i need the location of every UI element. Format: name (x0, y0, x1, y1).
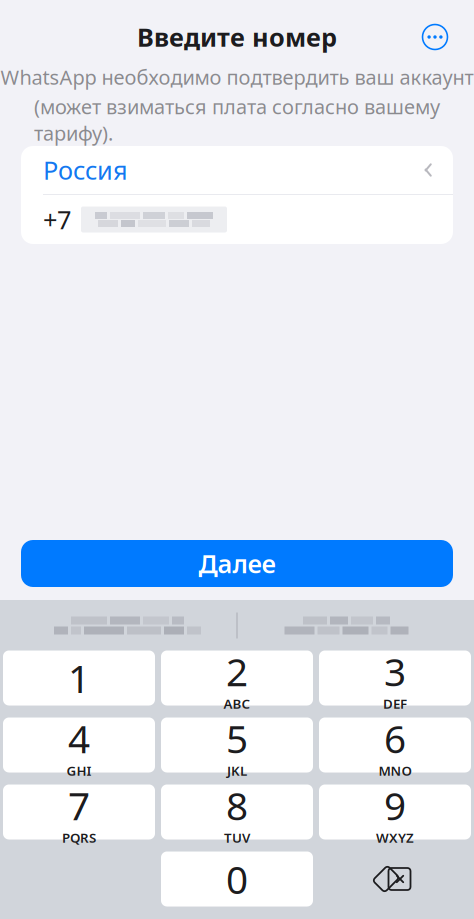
staticText: Введите номер (137, 20, 337, 54)
button[interactable]: 2 (161, 650, 313, 705)
button[interactable]: 9 (319, 784, 471, 839)
staticText: (может взиматься плата согласно вашему т… (34, 93, 440, 146)
button[interactable]: Suggestion (18, 602, 236, 648)
staticText: WhatsApp необходимо подтвердить ваш акка… (0, 64, 473, 90)
staticText: ABC (223, 695, 250, 712)
staticText: 4 (68, 712, 90, 764)
button[interactable]: Далее (21, 540, 453, 587)
button[interactable]: 1 (3, 650, 155, 705)
staticText: DEF (383, 695, 407, 712)
staticText: 7 (68, 779, 90, 831)
staticText: 1 (68, 652, 90, 704)
button[interactable]: More options (413, 15, 457, 59)
button[interactable]: 7 (3, 784, 155, 839)
staticText: PQRS (62, 829, 96, 846)
button[interactable]: +7 (21, 195, 453, 244)
button[interactable]: Россия (21, 146, 453, 194)
staticText: 0 (226, 853, 248, 905)
staticText: +7 (43, 203, 71, 236)
staticText: 2 (226, 645, 248, 697)
button[interactable]: 6 (319, 717, 471, 772)
staticText: MNO (378, 762, 411, 779)
staticText: 5 (226, 712, 248, 764)
button[interactable]: 3 (319, 650, 471, 705)
staticText: TUV (224, 829, 250, 846)
staticText: 8 (226, 779, 248, 831)
button[interactable]: 8 (161, 784, 313, 839)
staticText: Россия (43, 153, 128, 187)
staticText: 3 (384, 645, 406, 697)
staticText: 9 (384, 779, 406, 831)
staticText: Далее (198, 547, 275, 580)
staticText: WXYZ (376, 829, 414, 846)
button[interactable]: 4 (3, 717, 155, 772)
staticText: GHI (66, 762, 91, 779)
staticText: JKL (227, 762, 247, 779)
staticText: 6 (384, 712, 406, 764)
button[interactable]: 5 (161, 717, 313, 772)
button[interactable]: Suggestion (237, 602, 455, 648)
button[interactable]: 0 (161, 851, 313, 906)
button[interactable]: Delete (319, 851, 471, 906)
